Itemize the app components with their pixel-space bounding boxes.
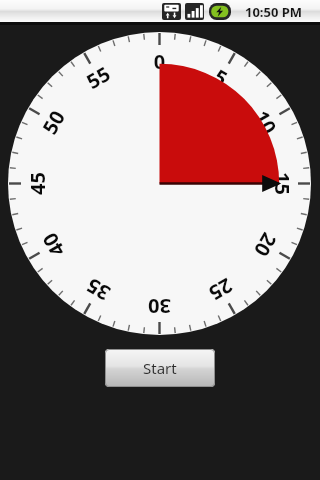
staticText: Start bbox=[143, 358, 177, 378]
button[interactable]: Start bbox=[105, 349, 215, 387]
staticText: 10:50 PM bbox=[245, 3, 303, 21]
other: Timer dial, 15 minutes bbox=[8, 32, 311, 335]
